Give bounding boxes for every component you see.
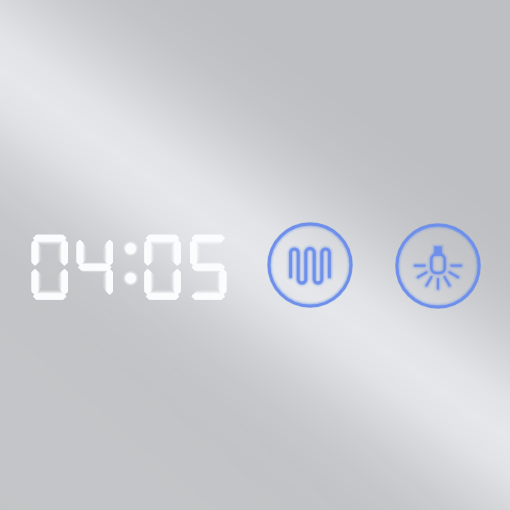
button[interactable]: Light bbox=[395, 223, 481, 309]
button[interactable]: Defogger bbox=[267, 222, 353, 308]
